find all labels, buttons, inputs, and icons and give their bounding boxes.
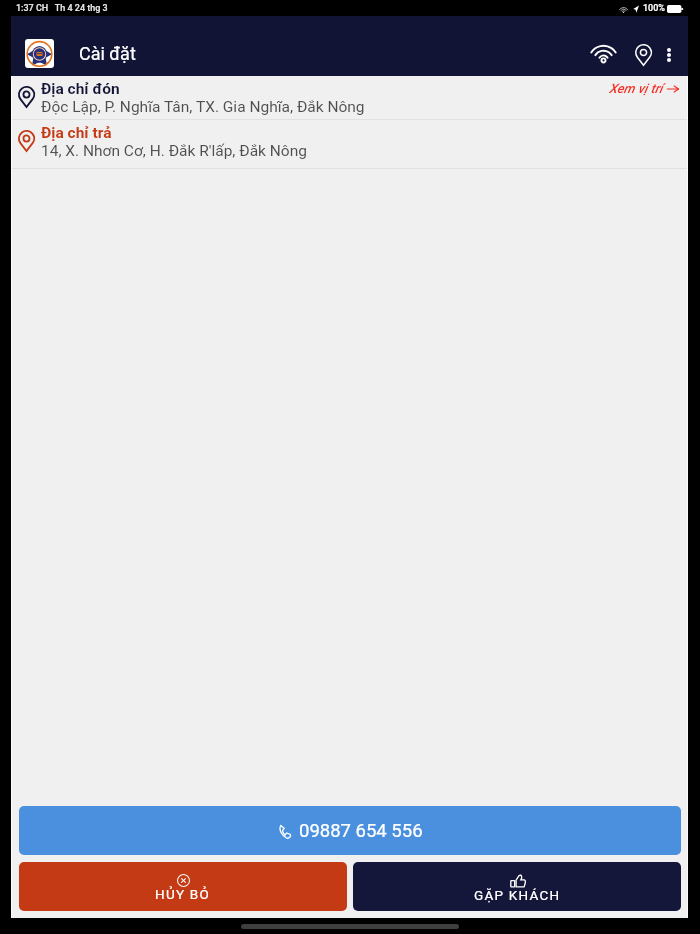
staticText: Độc Lập, P. Nghĩa Tân, TX. Gia Nghĩa, Đắ… [41,98,365,116]
button[interactable]: 09887 654 556 [19,806,681,855]
staticText: HỦY BỎ [155,886,211,902]
staticText: Địa chỉ đón [41,80,120,98]
staticText: GẶP KHÁCH [474,887,561,903]
staticText: Xem vị trí [609,81,663,96]
staticText: Địa chỉ trả [41,124,112,142]
staticText: Cài đặt [79,43,136,64]
button[interactable]: App logo [25,39,54,68]
button[interactable]: More options [656,30,682,76]
button[interactable]: Xem vị trí [605,81,679,96]
staticText: 1:37 CH Th 4 24 thg 3 [16,3,108,14]
staticText: 09887 654 556 [299,820,423,842]
button[interactable]: GẶP KHÁCH [353,862,681,911]
staticText: 100% [643,3,665,14]
button[interactable]: Wifi [590,30,628,76]
button[interactable]: Địa chỉ đón [11,76,688,120]
button[interactable]: HỦY BỎ [19,862,347,911]
staticText: 14, X. Nhơn Cơ, H. Đắk R'lấp, Đắk Nông [41,142,307,160]
button[interactable]: Location [630,30,656,76]
button[interactable]: Địa chỉ trả [11,120,688,169]
